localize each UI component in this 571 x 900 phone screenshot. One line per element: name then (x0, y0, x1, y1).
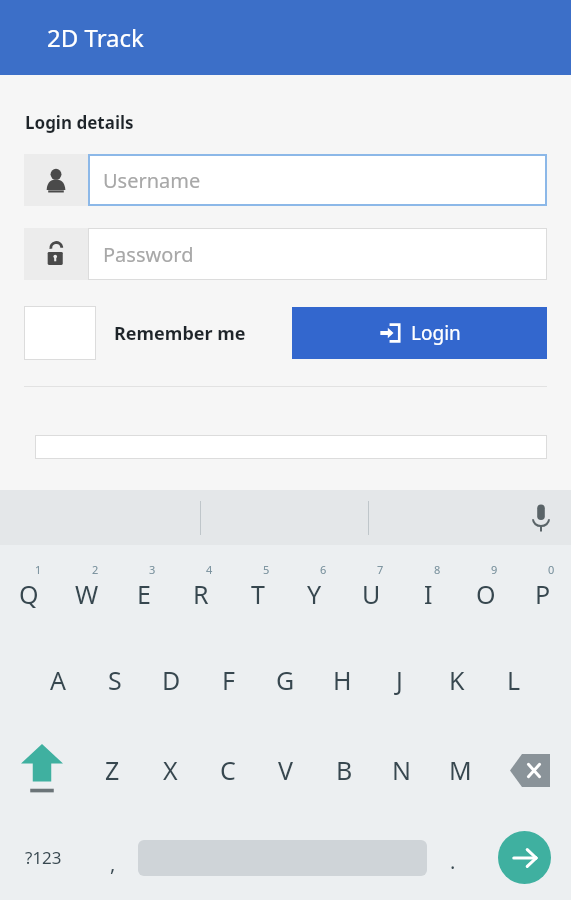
staticText: 2 (92, 562, 99, 577)
button[interactable]: L (485, 635, 542, 725)
button[interactable]: X (141, 725, 199, 815)
button[interactable]: 7 (343, 545, 400, 635)
staticText: 5 (263, 562, 270, 577)
button[interactable]: . (427, 815, 478, 900)
staticText: 8 (434, 562, 441, 577)
staticText: I (424, 577, 433, 611)
button[interactable]: 2 (58, 545, 115, 635)
button[interactable]: , (87, 815, 138, 900)
staticText: M (449, 753, 472, 787)
button[interactable]: K (428, 635, 485, 725)
staticText: 1 (35, 562, 42, 577)
staticText: , (110, 850, 116, 877)
staticText: . (450, 848, 456, 875)
staticText: C (220, 753, 236, 787)
staticText: 0 (548, 562, 555, 577)
staticText: Z (105, 753, 120, 787)
button[interactable]: 5 (229, 545, 286, 635)
staticText: J (396, 663, 403, 697)
button[interactable]: 6 (286, 545, 343, 635)
staticText: W (75, 577, 99, 611)
button[interactable]: N (373, 725, 431, 815)
button[interactable]: 4 (172, 545, 229, 635)
staticText: Y (307, 577, 322, 611)
staticText: S (108, 663, 122, 697)
button[interactable]: 3 (115, 545, 172, 635)
staticText: O (476, 577, 496, 611)
button[interactable]: D (143, 635, 200, 725)
button[interactable]: Enter (478, 815, 571, 900)
button[interactable]: F (200, 635, 257, 725)
button[interactable]: ?123 (0, 815, 87, 900)
staticText: P (535, 577, 551, 611)
staticText: Remember me (114, 321, 246, 346)
button[interactable]: A (29, 635, 86, 725)
staticText: Username (103, 167, 201, 194)
staticText: 6 (320, 562, 327, 577)
button[interactable]: C (199, 725, 257, 815)
button[interactable]: 8 (400, 545, 457, 635)
staticText: A (50, 663, 66, 697)
staticText: Password (103, 241, 194, 268)
button[interactable]: S (86, 635, 143, 725)
staticText: K (449, 663, 465, 697)
button[interactable]: 0 (514, 545, 571, 635)
staticText: X (163, 753, 178, 787)
button[interactable]: Shift (0, 725, 83, 815)
staticText: V (278, 753, 294, 787)
staticText: 4 (206, 562, 213, 577)
button[interactable]: B (315, 725, 373, 815)
staticText: N (392, 753, 412, 787)
button[interactable]: G (257, 635, 314, 725)
staticText: H (333, 663, 352, 697)
staticText: 3 (149, 562, 156, 577)
button[interactable]: 1 (0, 545, 58, 635)
staticText: E (137, 577, 151, 611)
button[interactable]: Remember me checkbox (24, 306, 96, 360)
staticText: T (251, 577, 265, 611)
button[interactable]: Space (138, 815, 427, 900)
staticText: ?123 (25, 846, 62, 869)
button[interactable]: M (431, 725, 489, 815)
button[interactable]: Voice input (531, 503, 551, 533)
staticText: G (276, 663, 295, 697)
button[interactable]: 9 (457, 545, 514, 635)
button[interactable]: Z (83, 725, 141, 815)
button[interactable]: Login (292, 307, 547, 359)
staticText: 2D Track (47, 21, 144, 54)
staticText: D (162, 663, 181, 697)
staticText: R (193, 577, 209, 611)
staticText: 7 (377, 562, 384, 577)
button[interactable]: Backspace (489, 725, 571, 815)
button[interactable]: H (314, 635, 371, 725)
staticText: Q (19, 577, 39, 611)
staticText: Login details (25, 111, 134, 134)
button[interactable]: J (371, 635, 428, 725)
button[interactable]: V (257, 725, 315, 815)
button[interactable]: Password (24, 228, 547, 280)
staticText: U (362, 577, 381, 611)
staticText: B (336, 753, 353, 787)
staticText: 9 (491, 562, 498, 577)
button[interactable]: Username (24, 154, 547, 206)
staticText: L (507, 663, 521, 697)
staticText: F (222, 663, 235, 697)
staticText: Login (411, 320, 461, 346)
